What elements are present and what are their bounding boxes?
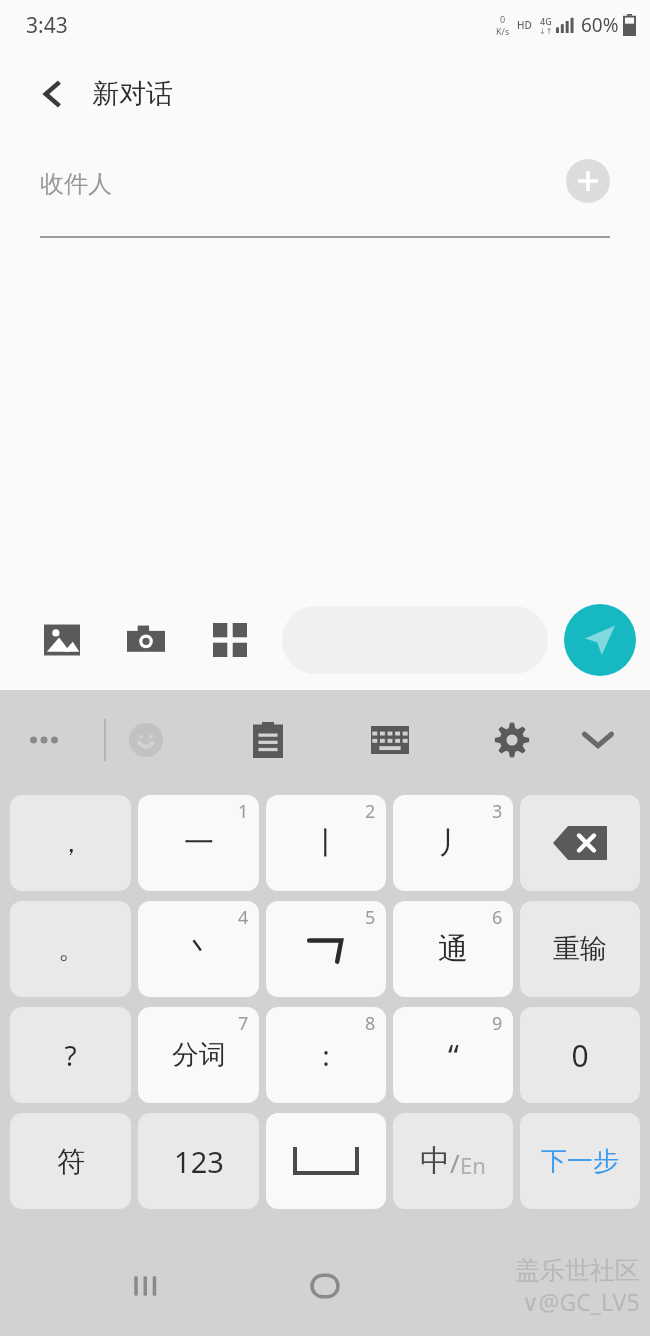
button[interactable]: 丨 — [266, 795, 386, 891]
button[interactable]: 123 — [138, 1113, 259, 1209]
staticText: 一 — [184, 824, 214, 862]
staticText: ∨@GC_LV5 — [522, 1286, 640, 1317]
button[interactable]: Clipboard — [240, 712, 296, 768]
button[interactable]: 0 — [520, 1007, 640, 1103]
staticText: K/s — [496, 25, 510, 37]
button[interactable]: 通 — [393, 901, 513, 997]
staticText: ? — [64, 1036, 77, 1074]
button[interactable]: : — [266, 1007, 386, 1103]
staticText: ， — [58, 827, 84, 860]
staticText: 中 — [420, 1142, 450, 1180]
button[interactable]: 丶 — [138, 901, 259, 997]
button[interactable]: Send — [564, 604, 636, 676]
staticText: 123 — [174, 1142, 224, 1181]
button[interactable]: 重输 — [520, 901, 640, 997]
button[interactable]: Back — [24, 66, 80, 122]
staticText: 新对话 — [92, 77, 173, 111]
button[interactable]: 符 — [10, 1113, 131, 1209]
staticText: 符 — [57, 1144, 85, 1179]
button[interactable]: Camera — [120, 614, 172, 666]
staticText: / — [450, 1145, 460, 1180]
button[interactable]: More options — [16, 712, 72, 768]
button[interactable]: Delete — [520, 795, 640, 891]
staticText: 2 — [365, 799, 376, 824]
button[interactable]: Home — [295, 1256, 355, 1316]
button[interactable]: 5 — [266, 901, 386, 997]
button[interactable]: 一 — [138, 795, 259, 891]
staticText: 收件人 — [40, 169, 112, 199]
button[interactable]: Add recipient — [566, 159, 610, 203]
staticText: 下一步 — [541, 1145, 619, 1178]
staticText: 重输 — [553, 932, 607, 966]
staticText: 60% — [581, 12, 619, 38]
staticText: 通 — [438, 930, 468, 968]
staticText: 分词 — [172, 1038, 226, 1072]
staticText: 4 — [238, 905, 249, 930]
staticText: 盖乐世社区 — [515, 1255, 640, 1286]
staticText: 9 — [492, 1011, 503, 1036]
staticText: 4G — [540, 15, 552, 27]
staticText: ↓↑ — [539, 27, 553, 36]
staticText: 7 — [238, 1011, 249, 1036]
button[interactable]: ， — [10, 795, 131, 891]
staticText: 丿 — [438, 824, 468, 862]
button[interactable]: More apps — [204, 614, 256, 666]
button[interactable]: Gallery — [36, 614, 88, 666]
staticText: 3:43 — [26, 11, 68, 40]
staticText: 6 — [492, 905, 503, 930]
staticText: “ — [448, 1035, 459, 1076]
button[interactable]: Emoji — [118, 712, 174, 768]
staticText: : — [322, 1036, 330, 1074]
button[interactable]: Space — [266, 1113, 386, 1209]
staticText: 。 — [58, 933, 84, 966]
button[interactable]: Hide keyboard — [570, 712, 626, 768]
staticText: 0 — [571, 1035, 589, 1076]
button[interactable]: Recents — [116, 1256, 176, 1316]
button[interactable]: 丿 — [393, 795, 513, 891]
staticText: 0 — [500, 13, 506, 25]
button[interactable]: 分词 — [138, 1007, 259, 1103]
button[interactable]: 中 — [393, 1113, 513, 1209]
staticText: 5 — [365, 905, 376, 930]
staticText: 丨 — [311, 824, 341, 862]
staticText: 丶 — [184, 930, 214, 968]
staticText: 3 — [492, 799, 503, 824]
staticText: HD — [517, 18, 532, 32]
button[interactable]: Keyboard layout — [362, 712, 418, 768]
button[interactable]: ? — [10, 1007, 131, 1103]
button[interactable]: “ — [393, 1007, 513, 1103]
staticText: 8 — [365, 1011, 376, 1036]
staticText: 1 — [238, 799, 249, 824]
button[interactable]: Settings — [484, 712, 540, 768]
button[interactable]: 。 — [10, 901, 131, 997]
button[interactable]: 下一步 — [520, 1113, 640, 1209]
staticText: En — [460, 1150, 486, 1180]
